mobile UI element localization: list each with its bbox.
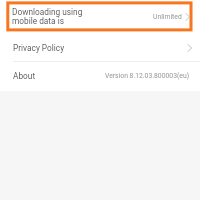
- button[interactable]: Privacy Policy: [0, 33, 200, 62]
- staticText: About: [13, 71, 105, 81]
- staticText: Downloading using: [12, 7, 83, 17]
- other: Open Privacy Policy: [187, 43, 193, 53]
- staticText: Privacy Policy: [13, 43, 187, 53]
- button[interactable]: Downloading using: [0, 0, 200, 33]
- staticText: mobile data is: [12, 16, 64, 26]
- staticText: Version 8.12.03.800003(eu): [105, 72, 190, 80]
- button[interactable]: About: [0, 61, 200, 90]
- staticText: Unlimited: [153, 13, 182, 21]
